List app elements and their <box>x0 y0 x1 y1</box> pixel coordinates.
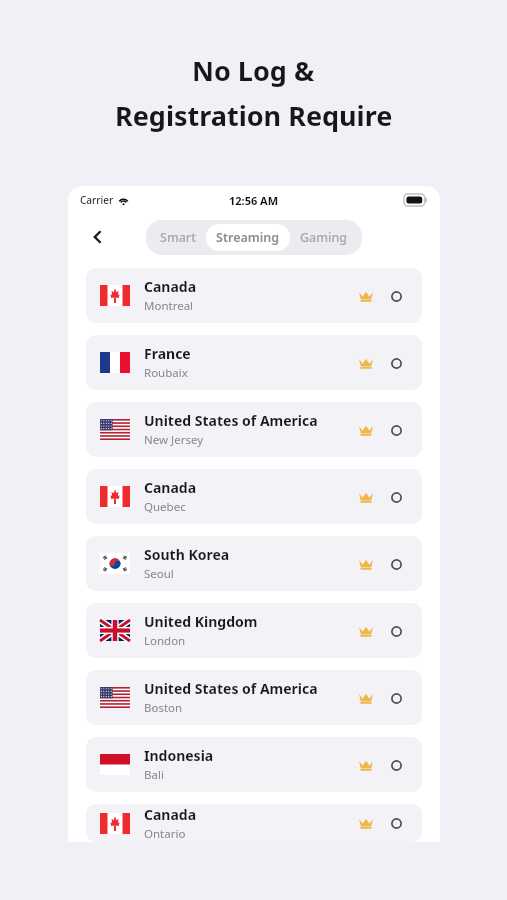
button[interactable]: Select server <box>384 811 408 835</box>
staticText: Indonesia <box>144 746 214 765</box>
button[interactable]: Premium <box>354 686 378 710</box>
button[interactable]: Select server <box>384 284 408 308</box>
button[interactable]: United States of America <box>86 670 422 725</box>
button[interactable]: Premium <box>354 753 378 777</box>
staticText: London <box>144 633 186 649</box>
staticText: United Kingdom <box>144 612 258 631</box>
button[interactable]: France <box>86 335 422 390</box>
button[interactable]: Select server <box>384 552 408 576</box>
staticText: Registration Require <box>115 97 393 134</box>
staticText: Seoul <box>144 566 174 582</box>
staticText: South Korea <box>144 545 230 564</box>
staticText: New Jersey <box>144 432 204 448</box>
staticText: Carrier <box>80 193 114 207</box>
button[interactable]: Premium <box>354 811 378 835</box>
button[interactable]: Premium <box>354 485 378 509</box>
button[interactable]: Premium <box>354 552 378 576</box>
button[interactable]: United States of America <box>86 402 422 457</box>
button[interactable]: Smart <box>150 224 206 251</box>
button[interactable]: Select server <box>384 619 408 643</box>
button[interactable]: Canada <box>86 469 422 524</box>
button[interactable]: South Korea <box>86 536 422 591</box>
button[interactable]: Premium <box>354 284 378 308</box>
staticText: Canada <box>144 805 197 824</box>
staticText: Smart <box>160 229 196 246</box>
staticText: Quebec <box>144 499 186 515</box>
button[interactable]: Premium <box>354 418 378 442</box>
staticText: Boston <box>144 700 183 716</box>
button[interactable]: Select server <box>384 418 408 442</box>
staticText: Canada <box>144 277 197 296</box>
staticText: Gaming <box>300 229 348 246</box>
staticText: 12:56 AM <box>229 193 279 208</box>
staticText: Streaming <box>216 229 280 246</box>
button[interactable]: Select server <box>384 686 408 710</box>
button[interactable]: Back <box>82 221 114 253</box>
button[interactable]: Premium <box>354 351 378 375</box>
button[interactable]: Indonesia <box>86 737 422 792</box>
button[interactable]: Select server <box>384 753 408 777</box>
staticText: France <box>144 344 191 363</box>
staticText: United States of America <box>144 411 318 430</box>
button[interactable]: Select server <box>384 485 408 509</box>
staticText: Canada <box>144 478 197 497</box>
button[interactable]: United Kingdom <box>86 603 422 658</box>
button[interactable]: Canada <box>86 804 422 842</box>
button[interactable]: Gaming <box>290 224 358 251</box>
button[interactable]: Streaming <box>206 224 290 251</box>
button[interactable]: Canada <box>86 268 422 323</box>
staticText: Bali <box>144 767 164 783</box>
staticText: Roubaix <box>144 365 188 381</box>
staticText: Ontario <box>144 826 186 842</box>
button[interactable]: Premium <box>354 619 378 643</box>
button[interactable]: Select server <box>384 351 408 375</box>
staticText: United States of America <box>144 679 318 698</box>
staticText: Montreal <box>144 298 194 314</box>
staticText: No Log & <box>192 52 315 89</box>
